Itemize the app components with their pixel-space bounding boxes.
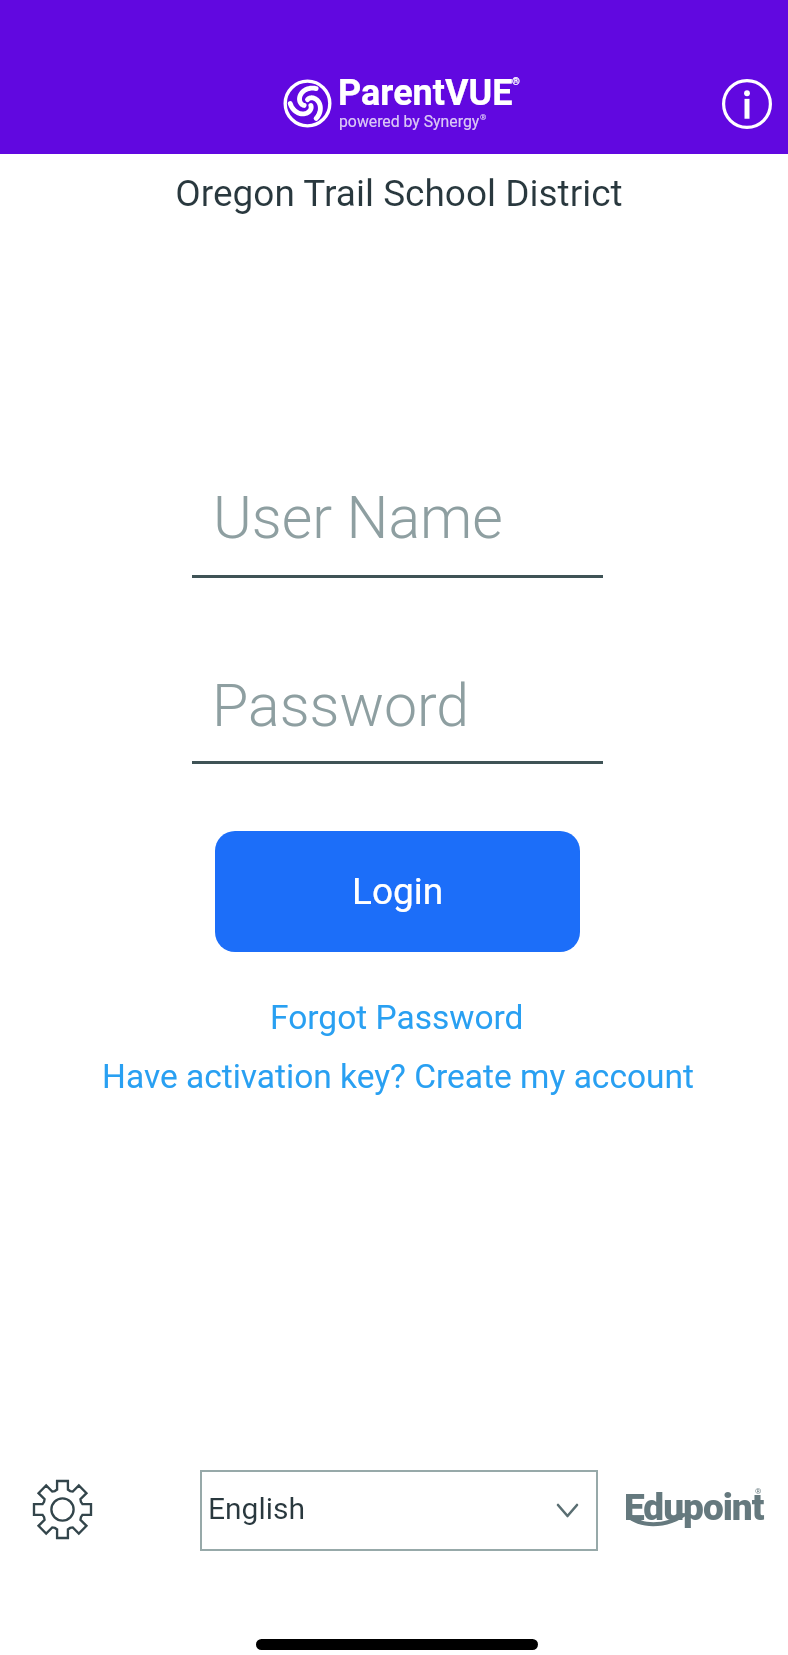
staticText: Forgot Password	[270, 998, 524, 1037]
staticText: ®	[755, 1487, 762, 1496]
button[interactable]: Have activation key? Create my account	[90, 1051, 706, 1102]
staticText: Login	[352, 870, 444, 913]
button[interactable]: Information	[710, 67, 784, 141]
button[interactable]: Settings	[24, 1471, 100, 1547]
button[interactable]: Login	[215, 831, 580, 952]
staticText: Have activation key? Create my account	[102, 1057, 694, 1096]
staticText: Edupoint	[624, 1486, 764, 1529]
staticText: English	[208, 1491, 306, 1526]
staticText: Password	[212, 671, 470, 740]
button[interactable]: Forgot Password	[258, 992, 536, 1043]
button[interactable]: Password	[192, 656, 603, 764]
staticText: ParentVUE	[338, 72, 513, 114]
staticText: ®	[512, 76, 520, 88]
staticText: powered by Synergy	[339, 112, 480, 131]
staticText: User Name	[213, 483, 503, 552]
button[interactable]: User Name	[192, 470, 603, 578]
staticText: ®	[480, 113, 487, 122]
staticText: Oregon Trail School District	[5, 172, 788, 215]
button[interactable]: English	[200, 1470, 598, 1551]
